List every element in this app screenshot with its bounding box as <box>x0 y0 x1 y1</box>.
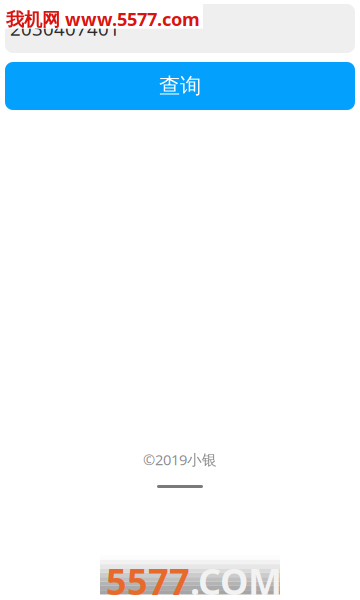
staticText: 5577 <box>106 556 190 600</box>
staticText: 查询 <box>159 73 201 99</box>
staticText: 2030407401 <box>10 16 120 41</box>
staticText: ©2019小银 <box>143 450 217 469</box>
staticText: .COM <box>190 556 282 600</box>
button[interactable]: 查询 <box>5 62 355 110</box>
staticText: 我机网 www.5577.com <box>6 7 200 31</box>
